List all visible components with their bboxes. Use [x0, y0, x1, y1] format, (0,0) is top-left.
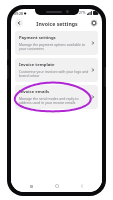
- staticText: Manage the send modes and reply-to addre…: [19, 96, 79, 105]
- button[interactable]: Payment settings: [15, 31, 98, 55]
- button[interactable]: Recent apps: [26, 181, 36, 191]
- staticText: Invoice template: [19, 62, 55, 68]
- staticText: Invoice emails: [19, 89, 50, 95]
- button[interactable]: Back: [77, 181, 87, 191]
- staticText: Customise your invoices with your logo a…: [19, 69, 89, 78]
- button[interactable]: Settings: [90, 19, 98, 27]
- staticText: Payment settings: [19, 35, 56, 41]
- button[interactable]: Home: [52, 181, 62, 191]
- button[interactable]: Invoice emails: [15, 85, 98, 109]
- staticText: Invoice settings: [36, 20, 78, 27]
- staticText: Manage the payment options available to …: [19, 42, 86, 51]
- button[interactable]: Invoice template: [15, 58, 98, 82]
- staticText: 09:28: [14, 11, 23, 16]
- staticText: 27%: [79, 11, 86, 15]
- button[interactable]: Back: [15, 19, 23, 27]
